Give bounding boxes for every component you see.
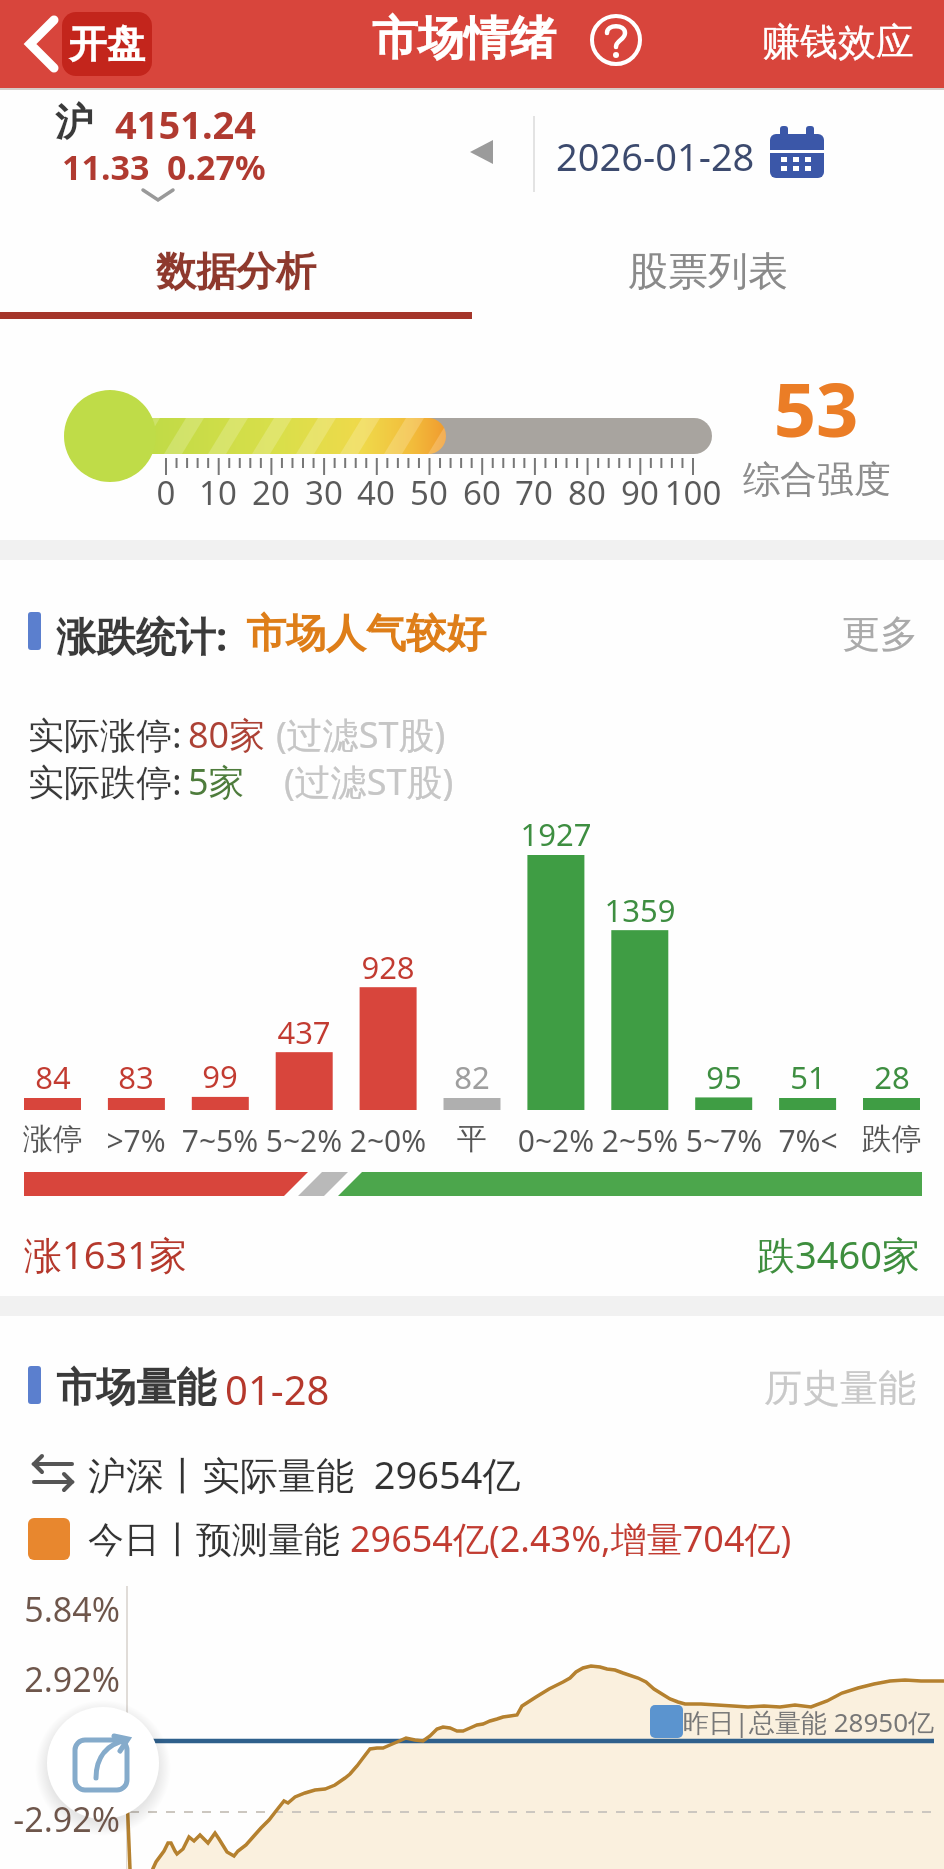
staticText: >7% [91, 1120, 181, 1161]
staticText: 99 [177, 1055, 263, 1097]
staticText: 数据分析 [0, 246, 472, 296]
staticText: 1927 [513, 813, 599, 855]
staticText: 实际跌停: [28, 757, 182, 806]
staticText: 100 [658, 470, 728, 515]
staticText: 2026-01-28 [556, 130, 755, 182]
button[interactable] [46, 1706, 160, 1820]
staticText: 市场量能 [56, 1362, 216, 1412]
staticText: 5~7% [679, 1120, 769, 1161]
staticText: (过滤ST股) [284, 757, 454, 806]
staticText: 70 [499, 470, 569, 515]
staticText: 80 [552, 470, 622, 515]
staticText: 沪深丨实际量能 29654亿 [88, 1448, 521, 1500]
staticText: 昨日|总量能 28950亿 [608, 1704, 934, 1740]
staticText: 53 [736, 358, 896, 459]
staticText: 4151.24 [115, 98, 257, 150]
staticText: 1359 [597, 889, 683, 931]
staticText: 20 [236, 470, 306, 515]
staticText: 90 [605, 470, 675, 515]
staticText: 5.84% [0, 1586, 120, 1632]
staticText: 80家 [188, 710, 266, 759]
staticText: 5~2% [259, 1120, 349, 1161]
staticText: 市场人气较好 [246, 608, 486, 658]
staticText: 928 [345, 946, 431, 988]
staticText: 市场情绪 [372, 10, 556, 68]
button[interactable] [450, 110, 850, 200]
staticText: 综合强度 [717, 456, 917, 503]
staticText: 今日丨预测量能 [88, 1514, 350, 1563]
staticText: 5家 [188, 757, 245, 806]
staticText: 10 [183, 470, 253, 515]
staticText: 开盘 [69, 20, 145, 68]
button[interactable] [590, 14, 644, 68]
staticText: 50 [394, 470, 464, 515]
staticText: 2~5% [595, 1120, 685, 1161]
staticText: 0 [131, 470, 201, 515]
staticText: 29654亿(2.43%,增量704亿) [350, 1514, 792, 1563]
staticText: 股票列表 [472, 246, 944, 296]
staticText: 涨停 [8, 1120, 98, 1158]
staticText: 历史量能 [764, 1364, 916, 1412]
staticText: 40 [341, 470, 411, 515]
staticText: (过滤ST股) [276, 710, 446, 759]
button[interactable]: 开盘 [62, 12, 152, 76]
staticText: 赚钱效应 [762, 18, 914, 66]
staticText: 平 [427, 1120, 517, 1158]
staticText: 跌3460家 [700, 1228, 920, 1280]
staticText: 更多 [842, 610, 918, 658]
staticText: 60 [447, 470, 517, 515]
button[interactable] [18, 8, 158, 80]
staticText: 83 [93, 1056, 179, 1098]
staticText: 跌停 [847, 1120, 937, 1158]
button[interactable]: 赚钱效应 [762, 18, 914, 66]
button[interactable]: 更多 [842, 610, 918, 658]
staticText: 01-28 [225, 1362, 330, 1416]
button[interactable]: 数据分析 [0, 246, 472, 296]
staticText: 0~2% [511, 1120, 601, 1161]
staticText: 7%< [763, 1120, 853, 1161]
staticText: 30 [289, 470, 359, 515]
staticText: 7~5% [175, 1120, 265, 1161]
staticText: 沪 [55, 98, 93, 146]
button[interactable]: 股票列表 [472, 246, 944, 296]
staticText: 2.92% [0, 1656, 120, 1702]
staticText: 84 [10, 1056, 96, 1098]
staticText: 28 [849, 1056, 935, 1098]
staticText: 51 [765, 1056, 851, 1098]
staticText: 82 [429, 1056, 515, 1098]
staticText: 95 [681, 1056, 767, 1098]
button[interactable]: 历史量能 [764, 1364, 916, 1412]
staticText: -2.92% [0, 1796, 120, 1842]
staticText: 11.33 0.27% [62, 144, 266, 190]
staticText: 437 [261, 1011, 347, 1053]
staticText: 实际涨停: [28, 710, 182, 759]
staticText: 涨跌统计: [56, 608, 228, 663]
staticText: 2~0% [343, 1120, 433, 1161]
staticText: 涨1631家 [24, 1228, 187, 1280]
